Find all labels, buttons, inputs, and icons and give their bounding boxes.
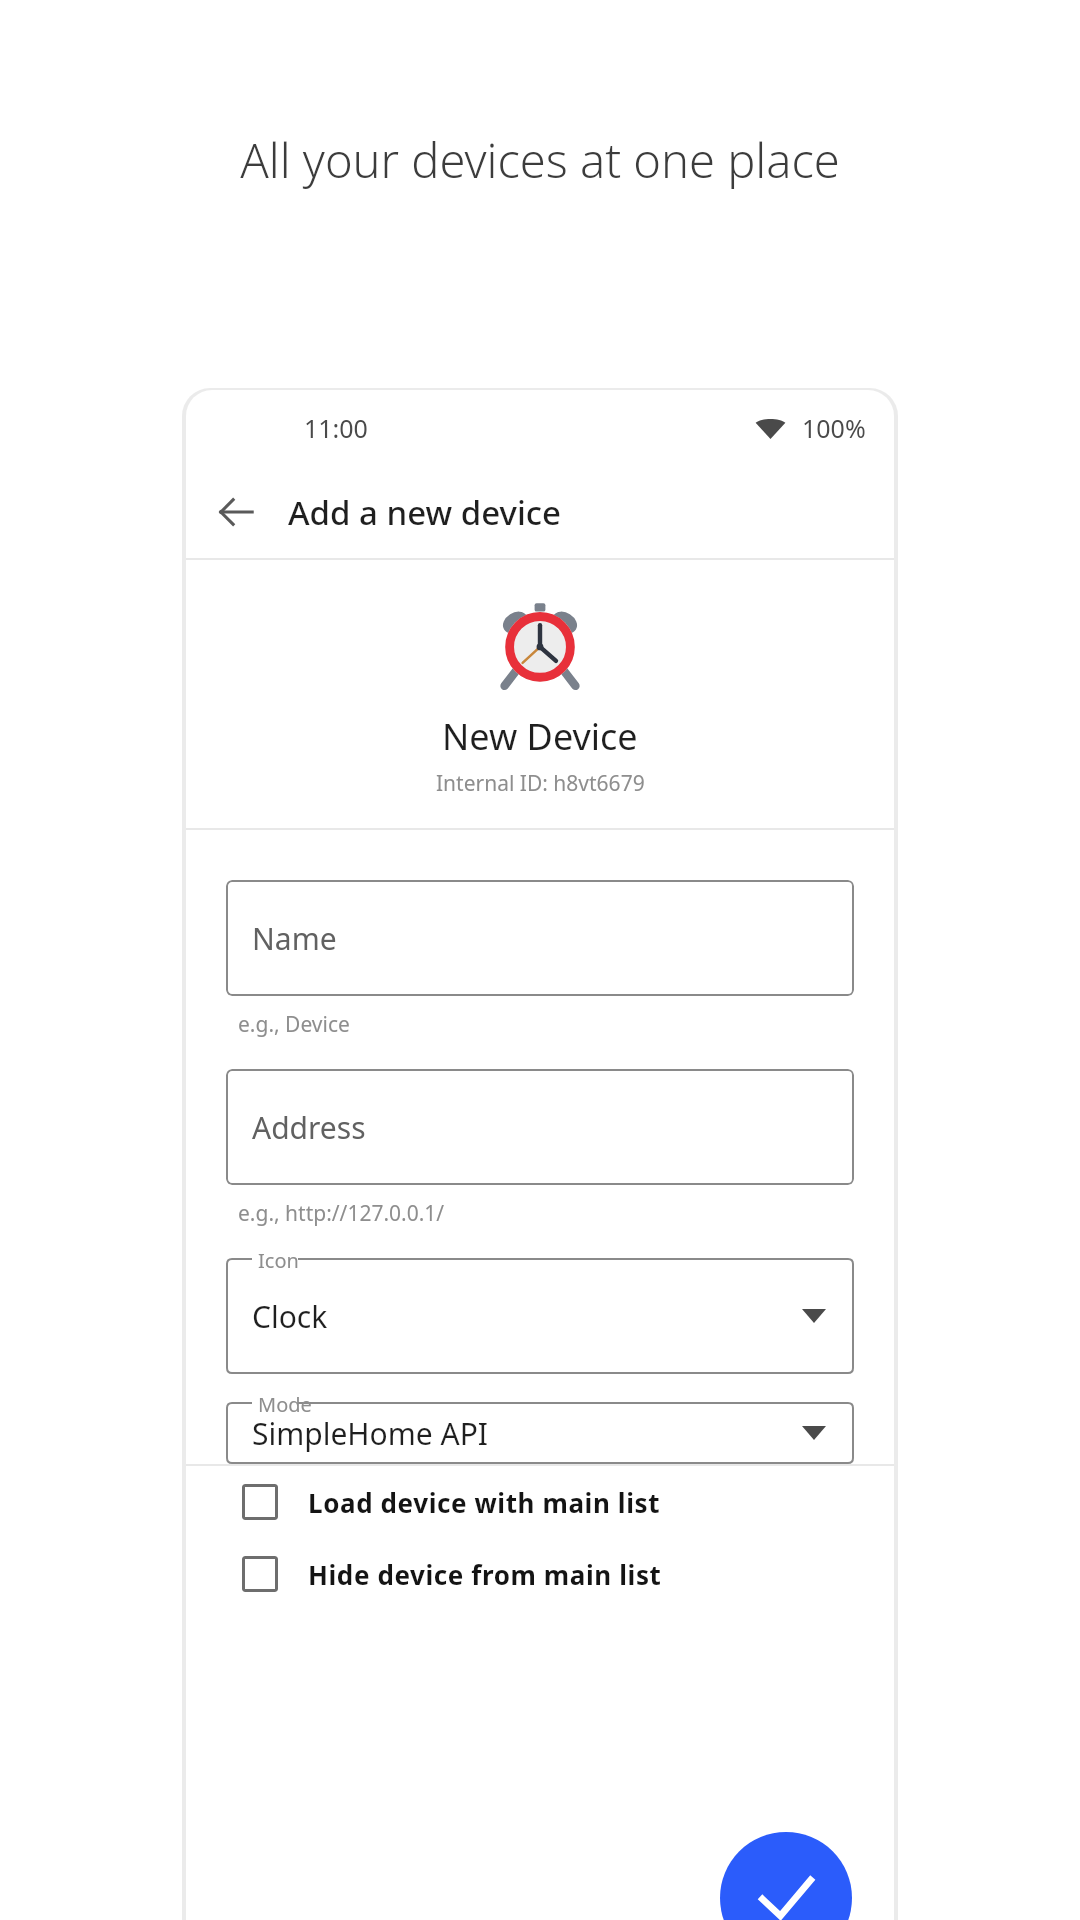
button[interactable]: Clock: [226, 1258, 854, 1374]
staticText: 11:00: [304, 411, 368, 445]
button[interactable]: Save device: [720, 1832, 852, 1920]
button[interactable]: SimpleHome API: [226, 1402, 854, 1464]
button[interactable]: Name: [226, 880, 854, 996]
staticText: SimpleHome API: [252, 1413, 489, 1454]
staticText: Clock: [252, 1296, 328, 1337]
staticText: e.g., Device: [238, 1010, 350, 1039]
staticText: e.g., http://127.0.0.1/: [238, 1199, 445, 1228]
staticText: New Device: [442, 712, 638, 761]
button[interactable]: Load device with main list: [186, 1466, 894, 1538]
staticText: Internal ID: h8vt6679: [436, 769, 645, 798]
staticText: Load device with main list: [308, 1485, 661, 1520]
staticText: Mode: [258, 1391, 312, 1418]
staticText: Hide device from main list: [308, 1557, 662, 1592]
button[interactable]: Back: [198, 474, 274, 550]
button[interactable]: Address: [226, 1069, 854, 1185]
staticText: 100%: [802, 411, 866, 445]
staticText: Add a new device: [288, 490, 561, 535]
button[interactable]: Hide device from main list: [186, 1538, 894, 1610]
staticText: Address: [252, 1107, 366, 1148]
staticText: Icon: [258, 1247, 299, 1274]
staticText: Name: [252, 918, 337, 959]
staticText: All your devices at one place: [240, 128, 840, 192]
